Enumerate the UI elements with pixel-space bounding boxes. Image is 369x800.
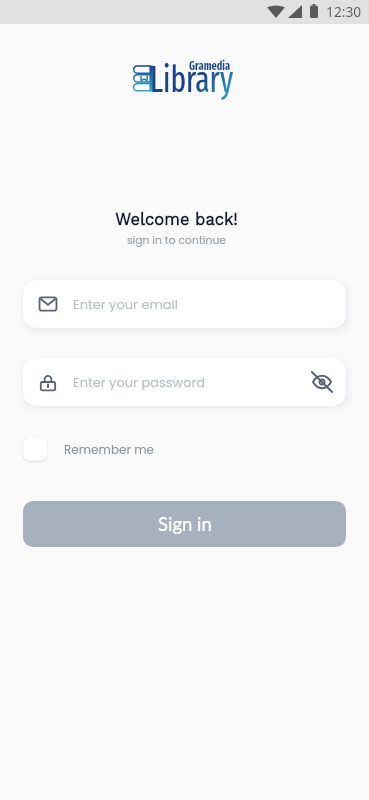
button[interactable]: Remember me checkbox (23, 437, 47, 461)
staticText: Library (150, 58, 234, 101)
staticText: Welcome back! (0, 210, 353, 229)
button[interactable]: Sign in (23, 501, 346, 547)
staticText: Remember me (64, 441, 154, 458)
button[interactable]: Show password (309, 369, 335, 395)
staticText: Enter your email (73, 295, 179, 313)
staticText: Enter your password (73, 373, 206, 391)
button[interactable]: Enter your password (23, 358, 346, 406)
staticText: 12:30 (326, 2, 362, 21)
staticText: Sign in (158, 513, 212, 535)
staticText: Gramedia (189, 59, 231, 73)
button[interactable]: Enter your email (23, 280, 346, 328)
staticText: sign in to continue (0, 233, 353, 248)
